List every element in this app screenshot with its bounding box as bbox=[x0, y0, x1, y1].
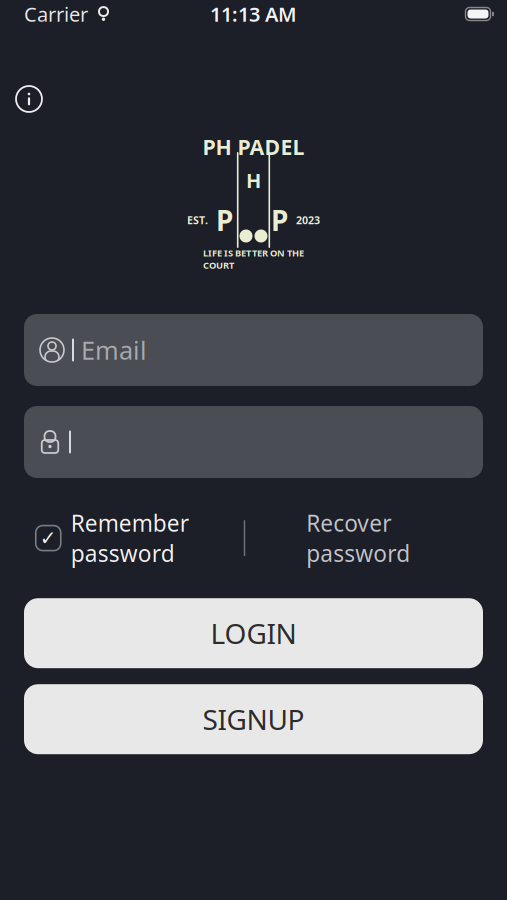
staticText: LOGIN bbox=[210, 615, 296, 652]
staticText: PH PADEL bbox=[202, 133, 304, 161]
staticText: 11:13 AM bbox=[210, 1, 297, 27]
staticText: SIGNUP bbox=[202, 701, 304, 738]
staticText: 2023 bbox=[296, 213, 320, 227]
button[interactable]: Recover password bbox=[245, 499, 471, 577]
staticText: LIFE IS BETTER ON THE COURT bbox=[203, 247, 304, 271]
button[interactable]: LOGIN bbox=[24, 598, 483, 668]
staticText: Carrier bbox=[24, 1, 88, 27]
button[interactable]: Information bbox=[0, 78, 42, 120]
staticText: P bbox=[271, 201, 288, 239]
staticText: Recover password bbox=[306, 508, 410, 568]
staticText: P bbox=[216, 201, 233, 239]
staticText: EST. bbox=[187, 213, 208, 227]
staticText: H bbox=[246, 167, 261, 193]
button[interactable]: SIGNUP bbox=[24, 684, 483, 754]
button[interactable]: ✓ bbox=[36, 499, 244, 577]
staticText: ✓ bbox=[40, 527, 57, 549]
staticText: Remember password bbox=[71, 508, 189, 568]
staticText: Email bbox=[81, 333, 147, 367]
